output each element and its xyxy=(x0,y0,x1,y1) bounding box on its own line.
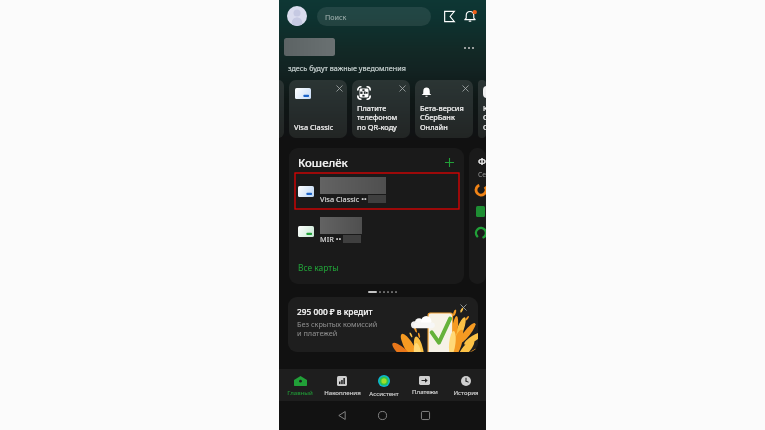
button[interactable]: Dismiss xyxy=(352,80,410,138)
staticText: MIR •• xyxy=(320,234,342,244)
button[interactable]: Главный xyxy=(279,369,321,401)
staticText: Кошелёк xyxy=(298,155,348,170)
button[interactable]: 295 000 ₽ в кредит xyxy=(288,297,478,352)
button[interactable]: Dismiss xyxy=(460,304,467,311)
staticText: Visa Classic xyxy=(294,122,334,132)
staticText: Платите телефоном по QR-коду xyxy=(357,103,398,133)
button[interactable]: Recent apps xyxy=(415,405,436,426)
button[interactable]: Add card xyxy=(443,156,455,168)
button[interactable]: Back xyxy=(331,405,352,426)
staticText: Платежи xyxy=(412,387,438,395)
button[interactable]: Profile xyxy=(287,6,307,26)
button[interactable]: MIR •• xyxy=(289,216,464,252)
button[interactable]: Накопления xyxy=(321,369,363,401)
button[interactable]: Dismiss xyxy=(462,85,469,92)
staticText: Се xyxy=(478,170,486,179)
staticText: Накопления xyxy=(324,388,361,396)
button[interactable]: Ассистент xyxy=(363,369,404,401)
staticText: здесь будут важные уведомления xyxy=(288,63,406,73)
button[interactable]: Dismiss xyxy=(415,80,473,138)
button[interactable]: Все карты xyxy=(298,262,339,273)
button[interactable]: Dismiss xyxy=(399,85,406,92)
staticText: К С О xyxy=(483,103,486,133)
button[interactable]: Notifications xyxy=(460,7,480,27)
button[interactable]: Dismiss xyxy=(336,85,343,92)
staticText: Visa Classic •• xyxy=(320,194,367,204)
staticText: Ассистент xyxy=(369,389,399,397)
button[interactable]: История xyxy=(445,369,486,401)
button[interactable]: К С О xyxy=(478,80,486,138)
button[interactable]: Visa Classic •• xyxy=(289,176,464,212)
staticText: Без скрытых комиссий и платежей xyxy=(297,319,378,339)
staticText: Главный xyxy=(287,388,313,396)
button[interactable]: Home xyxy=(372,405,393,426)
staticText: 295 000 ₽ в кредит xyxy=(297,306,373,317)
button[interactable]: Платежи xyxy=(404,369,445,401)
button[interactable]: Поиск xyxy=(317,7,431,26)
staticText: Поиск xyxy=(325,12,347,22)
button[interactable]: More options xyxy=(464,47,474,49)
staticText: Ф xyxy=(478,155,486,168)
button[interactable]: Dismiss xyxy=(289,80,347,138)
button[interactable]: Stories xyxy=(440,7,459,26)
button[interactable]: Ф xyxy=(469,148,486,284)
staticText: История xyxy=(453,388,479,396)
staticText: Бета-версия СберБанк Онлайн xyxy=(420,103,464,133)
